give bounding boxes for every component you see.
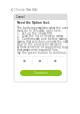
staticText: Choose New State	[14, 8, 38, 11]
staticText: must do in this state right here.	[17, 29, 62, 32]
button[interactable]: Edit item	[32, 57, 47, 65]
button[interactable]: Confirm item	[48, 57, 63, 65]
staticText: Need the Option Text.	[17, 21, 50, 24]
staticText: The body copy explains what the user	[17, 26, 68, 30]
button[interactable]: Add item	[17, 57, 32, 65]
staticText: Tap the green button to continue.	[17, 51, 67, 54]
staticText: 1. Set up the library first	[17, 32, 52, 35]
button[interactable]: Continue	[20, 70, 62, 76]
staticText: Continue	[34, 71, 48, 75]
staticText: Cancel	[16, 15, 25, 19]
staticText: step in the process for everyone.	[17, 43, 63, 46]
staticText: 2. Load the list of items to review	[17, 34, 63, 38]
button[interactable]: Cancel	[16, 14, 28, 20]
staticText: A final sentence of supporting copy	[17, 45, 68, 49]
staticText: 3. Confirm each one before saving	[17, 37, 67, 41]
button[interactable]: Choose New State	[11, 8, 38, 11]
staticText: Saving that selection unlocks the next	[17, 40, 68, 43]
staticText: that wraps onto a second line.	[17, 48, 59, 52]
